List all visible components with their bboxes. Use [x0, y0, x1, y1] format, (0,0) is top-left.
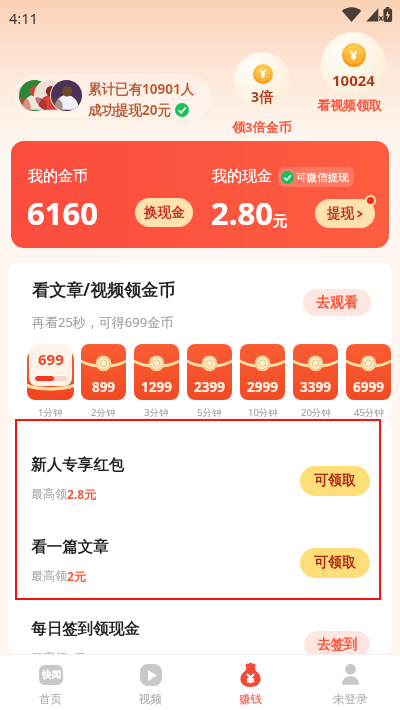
staticText: 6160: [27, 192, 98, 234]
staticText: 换现金: [144, 204, 185, 221]
staticText: 2399: [187, 378, 232, 396]
staticText: 5分钟: [197, 406, 222, 419]
staticText: 45分钟: [354, 406, 384, 419]
staticText: 看文章/视频领金币: [32, 278, 176, 301]
staticText: 去观看: [316, 294, 358, 312]
staticText: 10分钟: [248, 406, 278, 419]
staticText: 元: [273, 213, 287, 231]
button[interactable]: 每日签到领现金: [8, 591, 392, 654]
staticText: 2.8元: [67, 486, 97, 502]
staticText: 3倍: [251, 87, 274, 106]
button[interactable]: 3399: [293, 344, 338, 400]
button[interactable]: 未登录: [300, 655, 400, 710]
staticText: 看视频领取: [317, 97, 382, 113]
staticText: 再看25秒，可得699金币: [32, 313, 174, 331]
staticText: 2元: [67, 650, 86, 654]
staticText: 首页: [39, 692, 62, 706]
staticText: 快闻: [42, 669, 61, 681]
staticText: 看一篇文章: [31, 537, 109, 557]
staticText: 2元: [67, 568, 86, 584]
button[interactable]: 699: [27, 344, 74, 400]
staticText: 可微信提现: [296, 171, 349, 184]
button[interactable]: 看一篇文章: [8, 509, 392, 591]
staticText: 6999: [346, 378, 391, 396]
button[interactable]: 新人专享红包: [8, 427, 392, 509]
staticText: 1299: [134, 378, 179, 396]
button[interactable]: 提现: [315, 199, 375, 228]
staticText: 10024: [332, 70, 375, 90]
button[interactable]: 去签到: [304, 631, 370, 654]
staticText: 可领取: [314, 472, 356, 490]
staticText: 699: [38, 349, 64, 369]
staticText: 3分钟: [144, 406, 169, 419]
button[interactable]: 去观看: [303, 289, 371, 316]
button[interactable]: 视频: [100, 655, 200, 710]
staticText: 899: [81, 378, 126, 396]
staticText: 2分钟: [91, 406, 116, 419]
button[interactable]: 2999: [240, 344, 285, 400]
staticText: 提现: [327, 205, 354, 222]
button[interactable]: 6999: [346, 344, 391, 400]
staticText: 成功提现20元: [88, 101, 171, 118]
staticText: 20分钟: [301, 406, 331, 419]
staticText: 视频: [139, 692, 162, 706]
staticText: 赚钱: [239, 692, 262, 706]
staticText: ¥: [350, 47, 358, 64]
staticText: 最高领: [31, 650, 67, 654]
staticText: 每日签到领现金: [31, 619, 140, 639]
staticText: 最高领: [31, 568, 67, 583]
staticText: 4:11: [9, 8, 38, 28]
staticText: 我的金币: [28, 167, 88, 186]
button[interactable]: 可领取: [300, 548, 370, 578]
button[interactable]: 1299: [134, 344, 179, 400]
button[interactable]: 换现金: [135, 198, 193, 227]
button[interactable]: 2399: [187, 344, 232, 400]
staticText: 2.80: [211, 192, 273, 234]
staticText: 累计已有10901人: [88, 80, 195, 98]
staticText: 未登录: [333, 692, 368, 706]
button[interactable]: 可领取: [300, 466, 370, 496]
button[interactable]: 赚钱: [200, 655, 300, 710]
staticText: 可领取: [314, 554, 356, 572]
staticText: 最高领: [31, 486, 67, 501]
button[interactable]: 快闻: [0, 655, 100, 710]
staticText: 新人专享红包: [31, 455, 124, 475]
staticText: 3399: [293, 378, 338, 396]
button[interactable]: 累计已有10901人: [14, 74, 212, 118]
staticText: 2999: [240, 378, 285, 396]
staticText: 我的现金: [212, 167, 272, 186]
staticText: ¥: [260, 67, 266, 81]
staticText: 领3倍金币: [232, 118, 292, 136]
button[interactable]: 领3倍金币: [234, 52, 290, 108]
staticText: 去签到: [317, 636, 358, 653]
button[interactable]: 899: [81, 344, 126, 400]
button[interactable]: 看视频领取: [321, 32, 386, 97]
staticText: 1分钟: [38, 406, 63, 419]
